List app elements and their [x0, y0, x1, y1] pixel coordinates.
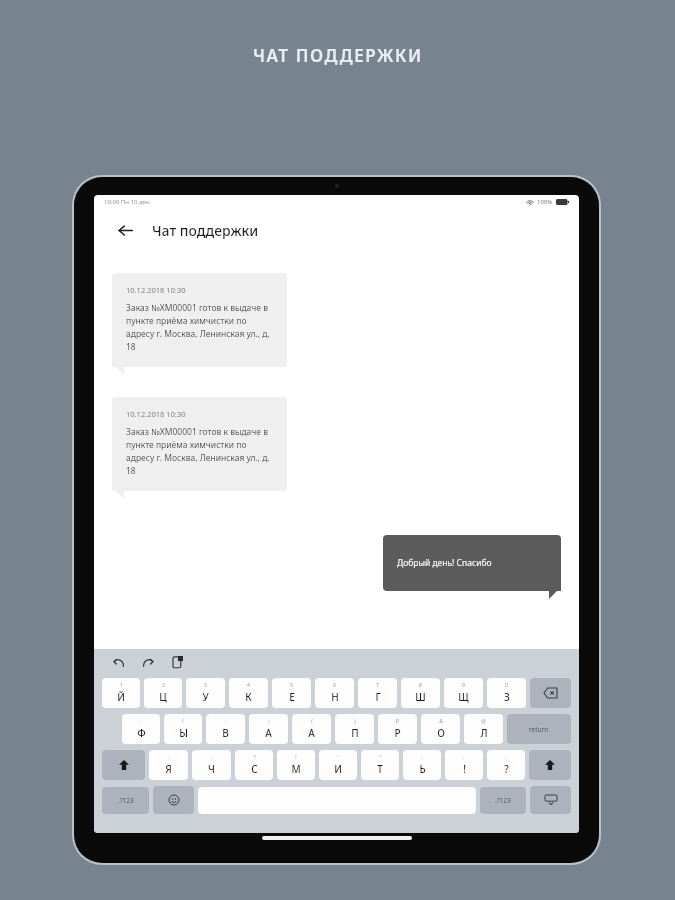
staticText: 10:09 Пн 10 дек. — [104, 198, 151, 206]
staticText: М — [291, 762, 301, 776]
staticText: Ш — [415, 690, 426, 704]
button[interactable]: ' — [319, 750, 357, 780]
button[interactable]: / — [164, 714, 202, 744]
staticText: @ — [481, 718, 486, 725]
button[interactable]: ) — [335, 714, 374, 744]
button[interactable]: Добрый день! Спасибо — [383, 535, 561, 591]
button[interactable]: ? — [235, 750, 273, 780]
button[interactable]: return — [507, 714, 571, 744]
button[interactable]: ! — [277, 750, 315, 780]
staticText: Т — [377, 762, 383, 776]
staticText: К — [245, 690, 252, 704]
button[interactable]: 0 — [487, 678, 526, 708]
staticText: 10.12.2018 10:30 — [126, 285, 186, 295]
staticText: Ы — [179, 726, 188, 740]
staticText: А — [265, 726, 272, 740]
staticText: Г — [375, 690, 381, 704]
button[interactable]: ; — [249, 714, 288, 744]
staticText: ' — [337, 754, 339, 761]
staticText: .?123 — [495, 796, 511, 805]
button[interactable]: 6 — [315, 678, 354, 708]
staticText: П — [351, 726, 359, 740]
button[interactable]: : — [206, 714, 245, 744]
button[interactable]: Hide keyboard — [530, 786, 571, 814]
staticText: 9 — [462, 682, 465, 689]
button[interactable]: & — [421, 714, 460, 744]
staticText: С — [251, 762, 258, 776]
button[interactable]: 5 — [272, 678, 311, 708]
staticText: ! — [463, 762, 466, 776]
button[interactable]: .?123 — [480, 787, 526, 814]
button[interactable]: 9 — [444, 678, 483, 708]
staticText: А — [308, 726, 315, 740]
staticText: . — [168, 754, 170, 761]
staticText: 5 — [290, 682, 293, 689]
button[interactable]: : — [403, 750, 441, 780]
button[interactable]: ₽ — [378, 714, 417, 744]
button[interactable]: Back — [110, 215, 140, 245]
staticText: ? — [504, 762, 509, 776]
button[interactable]: 4 — [229, 678, 268, 708]
staticText: return — [529, 725, 549, 734]
staticText: Заказ №ХМ00001 готов к выдаче в пункте п… — [126, 426, 275, 477]
button[interactable]: Undo — [108, 652, 128, 672]
staticText: . — [505, 754, 507, 761]
button[interactable]: Backspace — [530, 678, 571, 708]
staticText: ; — [268, 718, 270, 725]
staticText: З — [504, 690, 510, 704]
staticText: 100% — [537, 198, 553, 206]
staticText: Н — [331, 690, 339, 704]
staticText: ( — [311, 718, 313, 725]
button[interactable]: Shift — [102, 750, 145, 780]
button[interactable]: . — [149, 750, 188, 780]
staticText: , — [211, 754, 213, 761]
staticText: Ь — [419, 762, 426, 776]
staticText: Заказ №ХМ00001 готов к выдаче в пункте п… — [126, 302, 275, 353]
staticText: 6 — [333, 682, 336, 689]
button[interactable]: 8 — [401, 678, 440, 708]
staticText: О — [437, 726, 445, 740]
staticText: И — [334, 762, 342, 776]
button[interactable]: " — [361, 750, 399, 780]
staticText: 1 — [120, 682, 123, 689]
button[interactable]: 10.12.2018 10:30 — [112, 397, 287, 491]
button[interactable]: . — [487, 750, 525, 780]
button[interactable]: 3 — [186, 678, 225, 708]
staticText: Л — [480, 726, 488, 740]
staticText: ? — [253, 754, 256, 761]
staticText: 7 — [376, 682, 379, 689]
staticText: , — [463, 754, 465, 761]
staticText: Щ — [458, 690, 469, 704]
button[interactable]: 2 — [144, 678, 182, 708]
button[interactable]: 7 — [358, 678, 397, 708]
staticText: Й — [117, 690, 125, 704]
staticText: / — [182, 718, 184, 725]
staticText: Я — [165, 762, 172, 776]
staticText: 2 — [162, 682, 165, 689]
button[interactable]: , — [192, 750, 231, 780]
staticText: ) — [354, 718, 356, 725]
staticText: Ц — [159, 690, 167, 704]
staticText: 4 — [247, 682, 250, 689]
button[interactable]: , — [445, 750, 483, 780]
staticText: У — [202, 690, 209, 704]
staticText: ЧАТ ПОДДЕРЖКИ — [253, 44, 423, 67]
button[interactable]: .?123 — [102, 787, 149, 814]
staticText: Добрый день! Спасибо — [397, 557, 492, 569]
staticText: " — [379, 754, 382, 761]
button[interactable]: Emoji — [153, 786, 194, 814]
button[interactable]: ( — [292, 714, 331, 744]
button[interactable]: @ — [464, 714, 503, 744]
button[interactable]: Shift — [529, 750, 571, 780]
button[interactable]: Paste — [168, 652, 188, 672]
button[interactable]: Redo — [138, 652, 158, 672]
staticText: 3 — [204, 682, 207, 689]
button[interactable]: - — [122, 714, 160, 744]
staticText: 0 — [505, 682, 508, 689]
staticText: Р — [394, 726, 401, 740]
staticText: : — [421, 754, 423, 761]
button[interactable]: 10.12.2018 10:30 — [112, 273, 287, 367]
staticText: & — [439, 718, 443, 725]
button[interactable]: 1 — [102, 678, 140, 708]
